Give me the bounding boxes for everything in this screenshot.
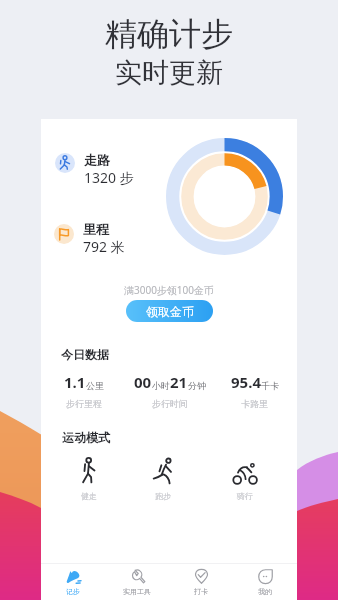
staticText: 领取金币 — [146, 304, 194, 319]
staticText: 00 — [134, 372, 152, 392]
staticText: 我的 — [258, 587, 272, 596]
staticText: 骑行 — [237, 491, 253, 501]
button[interactable]: 实用工具 — [105, 564, 169, 600]
staticText: 步行里程 — [66, 398, 102, 409]
staticText: 1.1 — [64, 372, 86, 392]
staticText: 记步 — [66, 587, 80, 596]
button[interactable]: 打卡 — [169, 564, 233, 600]
staticText: 精确计步 — [105, 14, 233, 54]
staticText: 千卡 — [261, 380, 279, 391]
staticText: 里程 — [83, 221, 109, 237]
staticText: 跑步 — [155, 491, 171, 501]
staticText: 分钟 — [188, 380, 206, 391]
staticText: 运动模式 — [62, 430, 110, 445]
button[interactable]: 记步 — [41, 564, 105, 600]
staticText: 打卡 — [194, 587, 208, 596]
staticText: 健走 — [81, 491, 97, 501]
button[interactable]: 跑步 — [142, 457, 184, 501]
staticText: 21 — [170, 372, 188, 392]
staticText: 满3000步领100金币 — [41, 283, 297, 297]
button[interactable]: 我的 — [233, 564, 297, 600]
staticText: 今日数据 — [61, 347, 109, 362]
staticText: 实用工具 — [123, 587, 151, 596]
button[interactable]: 领取金币 — [126, 300, 213, 322]
button[interactable]: 骑行 — [224, 457, 266, 501]
staticText: 1320 步 — [84, 168, 134, 187]
staticText: 小时 — [152, 380, 170, 391]
staticText: 792 米 — [83, 237, 125, 256]
button[interactable]: 健走 — [68, 457, 110, 501]
staticText: 公里 — [86, 380, 104, 391]
staticText: 95.4 — [231, 372, 261, 392]
staticText: 步行时间 — [152, 398, 188, 409]
staticText: 实时更新 — [115, 56, 223, 90]
staticText: 走路 — [84, 152, 110, 168]
staticText: 卡路里 — [241, 398, 268, 409]
